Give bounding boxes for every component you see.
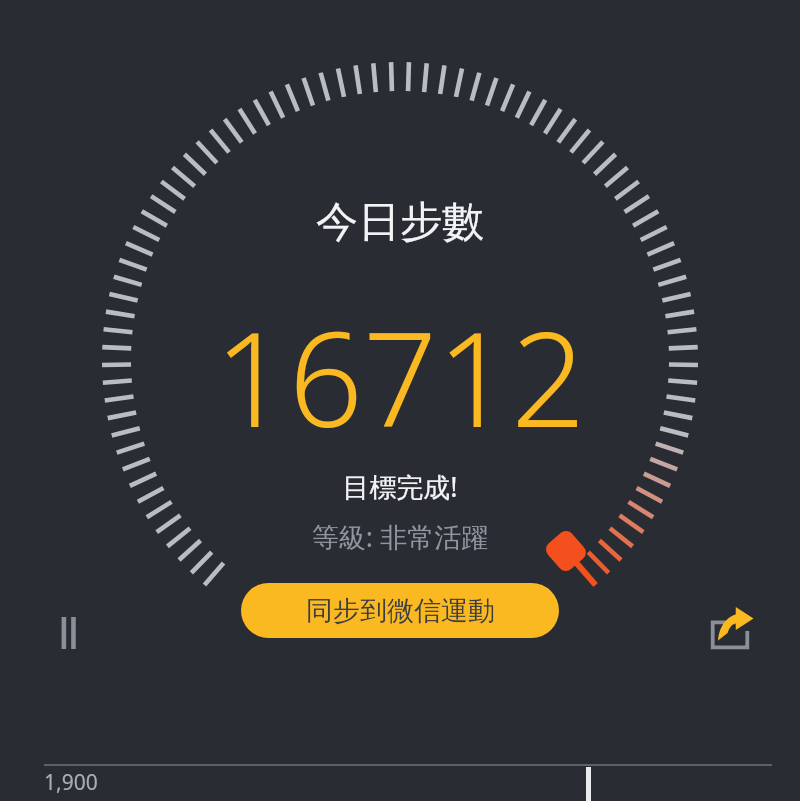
staticText: 16712 xyxy=(80,288,720,465)
staticText: 1,900 xyxy=(44,768,98,797)
button[interactable]: Pause xyxy=(38,602,100,664)
button[interactable]: Share xyxy=(698,598,762,662)
staticText: 目標完成! xyxy=(190,468,610,505)
staticText: 今日步數 xyxy=(190,196,610,249)
staticText: 等級: 非常活躍 xyxy=(140,518,660,555)
button[interactable]: 同步到微信運動 xyxy=(241,583,559,638)
staticText: 同步到微信運動 xyxy=(306,594,495,628)
